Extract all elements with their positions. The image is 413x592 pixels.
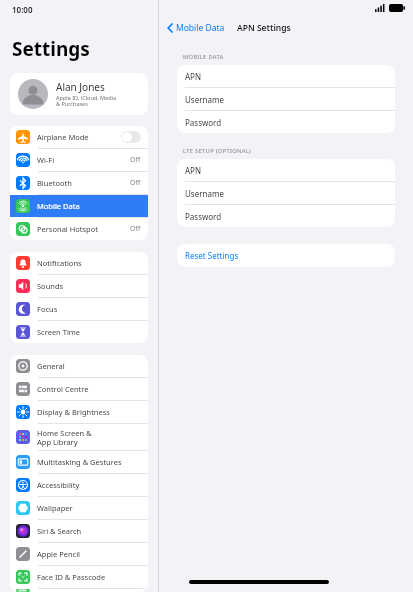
button[interactable]: Password [177, 111, 395, 133]
button[interactable]: Mobile Data [10, 195, 148, 217]
staticText: Display & Brightness [37, 407, 141, 417]
staticText: Username [185, 188, 224, 199]
staticText: Off [130, 155, 141, 165]
button[interactable]: Focus [10, 298, 148, 320]
button[interactable]: Personal Hotspot [10, 218, 148, 240]
button[interactable]: Face ID & Passcode [10, 566, 148, 588]
button[interactable]: Home Screen & App Library [10, 424, 148, 450]
staticText: Face ID & Passcode [37, 572, 141, 582]
staticText: Home Screen & App Library [37, 428, 141, 447]
staticText: Wallpaper [37, 503, 141, 513]
button[interactable]: Password [177, 205, 395, 227]
button[interactable]: APN [177, 159, 395, 181]
button[interactable]: General [10, 355, 148, 377]
staticText: Screen Time [37, 327, 141, 337]
staticText: Password [185, 117, 222, 128]
button[interactable]: Bluetooth [10, 172, 148, 194]
staticText: Accessibility [37, 480, 141, 490]
button[interactable]: Apple Pencil [10, 543, 148, 565]
button[interactable]: Control Centre [10, 378, 148, 400]
staticText: Personal Hotspot [37, 224, 130, 234]
button[interactable]: Wi-Fi [10, 149, 148, 171]
staticText: Apple Pencil [37, 549, 141, 559]
button[interactable]: Multitasking & Gestures [10, 451, 148, 473]
staticText: Control Centre [37, 384, 141, 394]
staticText: Off [130, 178, 141, 188]
button[interactable]: Username [177, 88, 395, 110]
staticText: APN [185, 71, 202, 82]
staticText: Username [185, 94, 224, 105]
button[interactable]: Alan Jones [10, 73, 148, 115]
button[interactable]: Reset Settings [177, 244, 395, 267]
button[interactable]: Screen Time [10, 321, 148, 343]
button[interactable]: Accessibility [10, 474, 148, 496]
staticText: Focus [37, 304, 141, 314]
staticText: Apple ID, iCloud, Media & Purchases [56, 94, 117, 108]
staticText: Notifications [37, 258, 141, 268]
staticText: Siri & Search [37, 526, 141, 536]
staticText: Mobile Data [37, 201, 141, 211]
staticText: Bluetooth [37, 178, 130, 188]
button[interactable]: Wallpaper [10, 497, 148, 519]
button[interactable]: Sounds [10, 275, 148, 297]
staticText: General [37, 361, 141, 371]
staticText: Wi-Fi [37, 155, 130, 165]
staticText: Mobile Data [176, 22, 225, 34]
button[interactable]: Siri & Search [10, 520, 148, 542]
staticText: Reset Settings [185, 250, 239, 261]
staticText: Off [130, 224, 141, 234]
button[interactable]: Mobile Data [167, 22, 225, 34]
button[interactable]: Username [177, 182, 395, 204]
staticText: Airplane Mode [37, 132, 121, 142]
staticText: Password [185, 211, 222, 222]
button[interactable]: Notifications [10, 252, 148, 274]
staticText: MOBILE DATA [183, 53, 224, 61]
button[interactable]: APN [177, 65, 395, 87]
button[interactable]: Airplane Mode [10, 126, 148, 148]
staticText: APN [185, 165, 202, 176]
staticText: Settings [12, 36, 90, 62]
staticText: 10:00 [12, 4, 33, 15]
button[interactable]: Battery [10, 589, 148, 592]
staticText: Sounds [37, 281, 141, 291]
staticText: LTE SETUP (OPTIONAL) [183, 147, 252, 155]
button[interactable]: Display & Brightness [10, 401, 148, 423]
button[interactable]: Airplane Mode toggle [121, 131, 141, 143]
staticText: Alan Jones [56, 80, 105, 94]
staticText: APN Settings [237, 22, 291, 34]
staticText: Multitasking & Gestures [37, 457, 141, 467]
